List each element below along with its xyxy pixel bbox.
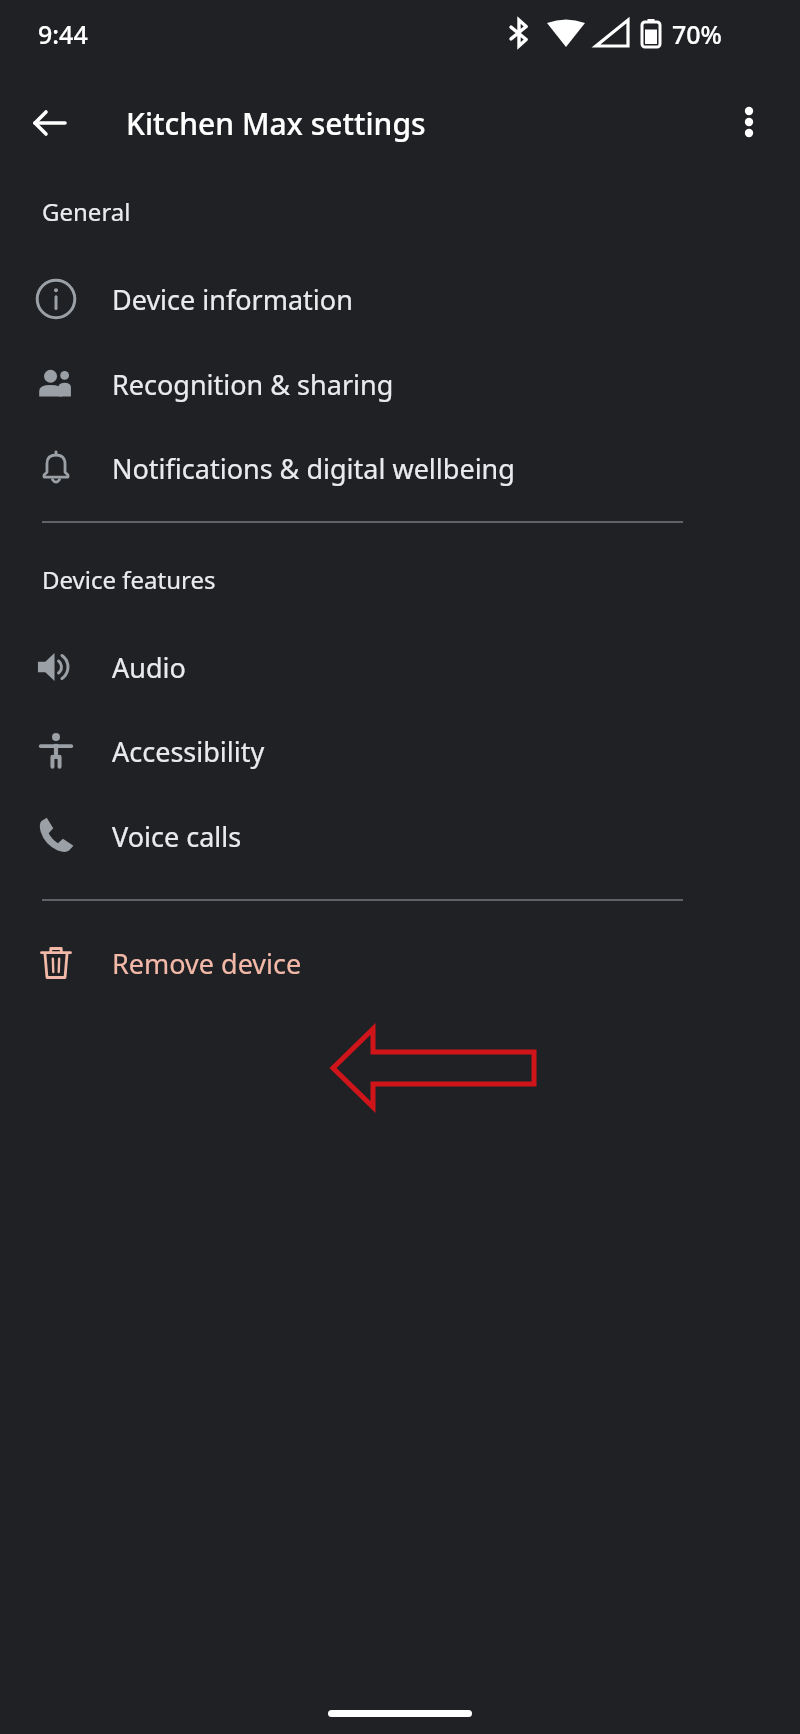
button[interactable]: Voice calls xyxy=(0,803,800,869)
button[interactable]: Recognition & sharing xyxy=(0,351,800,417)
button[interactable]: Accessibility xyxy=(0,718,800,784)
staticText: 70% xyxy=(672,17,722,51)
staticText: Device features xyxy=(42,563,216,596)
staticText: Accessibility xyxy=(112,733,265,770)
staticText: Recognition & sharing xyxy=(112,366,394,403)
button[interactable]: Audio xyxy=(0,634,800,700)
staticText: Voice calls xyxy=(112,818,242,855)
staticText: Device information xyxy=(112,281,353,318)
staticText: Notifications & digital wellbeing xyxy=(112,450,515,487)
staticText: Remove device xyxy=(112,945,302,982)
staticText: 9:44 xyxy=(38,17,88,51)
button[interactable]: Device information xyxy=(0,266,800,332)
button[interactable]: Notifications & digital wellbeing xyxy=(0,435,800,501)
button[interactable]: Back xyxy=(18,91,82,155)
staticText: Audio xyxy=(112,649,186,686)
staticText: General xyxy=(42,195,131,228)
button[interactable]: Remove device xyxy=(0,930,800,996)
button[interactable]: More options xyxy=(718,91,780,153)
staticText: Kitchen Max settings xyxy=(126,103,426,144)
